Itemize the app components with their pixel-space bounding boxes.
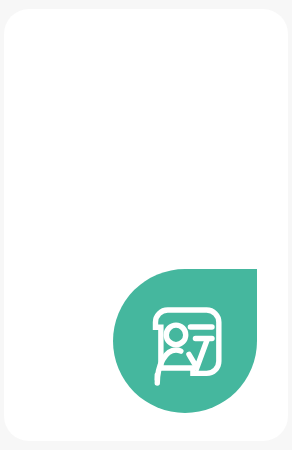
- button[interactable]: Contacts: [113, 269, 257, 413]
